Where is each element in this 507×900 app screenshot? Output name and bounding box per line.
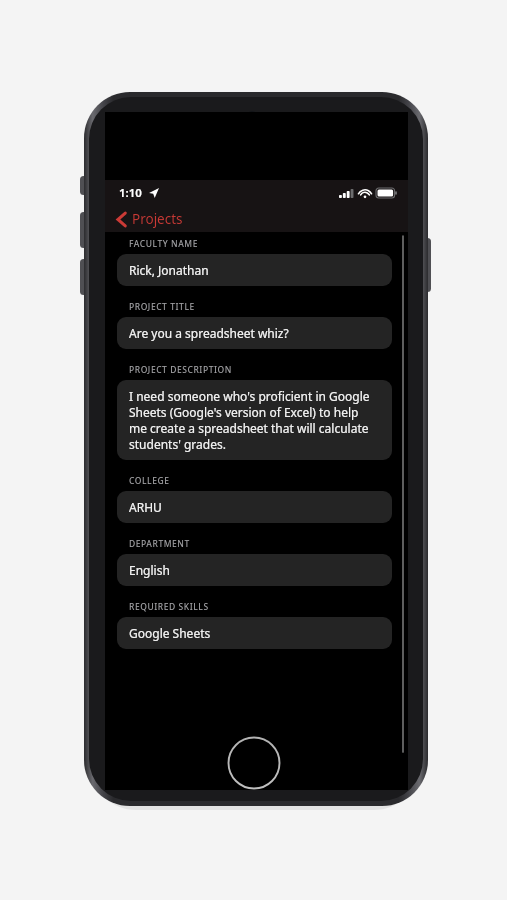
staticText: FACULTY NAME bbox=[129, 238, 199, 250]
staticText: I need someone who's proficient in Googl… bbox=[129, 388, 370, 404]
button[interactable]: I need someone who's proficient in Googl… bbox=[117, 380, 392, 460]
staticText: ARHU bbox=[129, 499, 162, 515]
button[interactable]: Are you a spreadsheet whiz? bbox=[117, 317, 392, 349]
staticText: DEPARTMENT bbox=[129, 538, 190, 550]
button[interactable]: English bbox=[117, 554, 392, 586]
button[interactable]: Back to Projects bbox=[113, 208, 187, 230]
staticText: Are you a spreadsheet whiz? bbox=[129, 325, 289, 341]
staticText: REQUIRED SKILLS bbox=[129, 601, 209, 613]
staticText: 1:10 bbox=[119, 185, 142, 201]
staticText: students' grades. bbox=[129, 436, 226, 452]
staticText: Projects bbox=[132, 210, 183, 228]
staticText: PROJECT DESCRIPTION bbox=[129, 364, 232, 376]
staticText: COLLEGE bbox=[129, 475, 170, 487]
staticText: Rick, Jonathan bbox=[129, 262, 209, 278]
button[interactable]: ARHU bbox=[117, 491, 392, 523]
button[interactable]: Rick, Jonathan bbox=[117, 254, 392, 286]
staticText: English bbox=[129, 562, 170, 578]
staticText: PROJECT TITLE bbox=[129, 301, 195, 313]
button[interactable]: Google Sheets bbox=[117, 617, 392, 649]
staticText: Sheets (Google's version of Excel) to he… bbox=[129, 404, 359, 420]
staticText: Google Sheets bbox=[129, 625, 211, 641]
staticText: me create a spreadsheet that will calcul… bbox=[129, 420, 369, 436]
